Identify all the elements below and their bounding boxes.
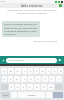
staticText: w <box>10 70 12 73</box>
staticText: y <box>36 70 38 73</box>
button[interactable]: Send <box>57 57 63 63</box>
button[interactable]: v <box>27 84 33 90</box>
staticText: n <box>43 86 45 89</box>
staticText: c <box>23 86 25 89</box>
staticText: b <box>36 86 38 89</box>
staticText: v <box>29 86 31 89</box>
button[interactable]: m <box>48 84 54 90</box>
button[interactable]: s <box>8 76 13 82</box>
staticText: f <box>24 78 25 81</box>
button[interactable]: Symbols <box>1 92 10 98</box>
staticText: d <box>16 78 18 81</box>
button[interactable]: Emoji <box>1 58 6 63</box>
button[interactable]: d <box>14 76 20 82</box>
button[interactable]: h <box>35 76 41 82</box>
button[interactable]: t <box>28 68 33 74</box>
staticText: e <box>17 70 19 73</box>
button[interactable]: y <box>34 68 39 74</box>
staticText: Add a new device <box>21 4 43 8</box>
staticText: Hold on a moment while we set things up … <box>4 23 38 35</box>
button[interactable]: c <box>21 84 26 90</box>
button[interactable]: a <box>2 76 7 82</box>
button[interactable]: l <box>56 76 62 82</box>
button[interactable]: More options <box>59 4 62 7</box>
staticText: 9:41 <box>1 0 5 3</box>
button[interactable]: p <box>58 68 63 74</box>
staticText: Type a message <box>8 59 25 62</box>
button[interactable]: e <box>15 68 21 74</box>
button[interactable]: f <box>21 76 27 82</box>
button[interactable]: u <box>40 68 45 74</box>
button[interactable]: n <box>41 84 47 90</box>
button[interactable]: Type a message <box>6 58 57 63</box>
staticText: a <box>4 78 6 81</box>
button[interactable]: z <box>9 84 14 90</box>
staticText: English <box>28 94 36 97</box>
button[interactable]: b <box>34 84 40 90</box>
staticText: j <box>45 78 46 81</box>
staticText: o <box>54 70 56 73</box>
staticText: m <box>50 86 53 89</box>
button[interactable]: g <box>28 76 34 82</box>
staticText: h <box>37 78 39 81</box>
button[interactable]: English <box>18 92 45 98</box>
button[interactable]: j <box>42 76 48 82</box>
staticText: ?123 <box>3 94 8 97</box>
staticText: t <box>30 70 31 73</box>
staticText: s <box>10 78 12 81</box>
button[interactable]: x <box>15 84 20 90</box>
staticText: z <box>11 86 13 89</box>
staticText: r <box>24 70 25 73</box>
staticText: l <box>59 78 60 81</box>
button[interactable]: o <box>52 68 57 74</box>
staticText: p <box>60 70 62 73</box>
staticText: Tap here to learn more <box>0 40 57 43</box>
button[interactable]: k <box>49 76 55 82</box>
button[interactable]: q <box>1 68 7 74</box>
button[interactable]: w <box>8 68 14 74</box>
staticText: g <box>30 78 32 81</box>
staticText: Link a device by scanning the QR code sh… <box>6 9 58 15</box>
staticText: x <box>17 86 19 89</box>
staticText: i <box>48 70 49 73</box>
staticText: , <box>14 94 15 97</box>
staticText: u <box>42 70 44 73</box>
button[interactable]: i <box>46 68 51 74</box>
button[interactable]: r <box>22 68 27 74</box>
staticText: q <box>3 70 5 73</box>
staticText: k <box>51 78 53 81</box>
